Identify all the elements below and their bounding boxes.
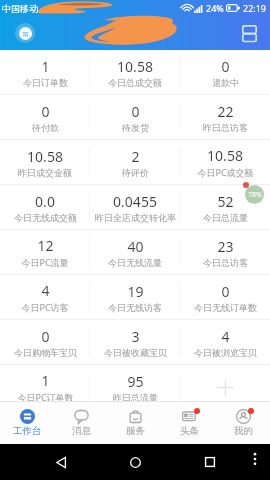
staticText: 0 [41, 102, 50, 121]
button[interactable]: 3 [90, 320, 180, 364]
button[interactable]: 1 [0, 50, 90, 94]
staticText: 10.58 [207, 146, 243, 165]
button[interactable]: 工作台 [0, 401, 54, 444]
staticText: 今日PC成交额 [197, 166, 254, 178]
staticText: 95 [127, 372, 144, 391]
button[interactable]: 0 [180, 50, 270, 94]
button[interactable]: 4 [180, 320, 270, 364]
staticText: 昨日成交金额 [18, 167, 72, 178]
staticText: 23 [217, 237, 234, 256]
button[interactable]: 95 [90, 365, 180, 401]
staticText: 78% [248, 190, 262, 200]
staticText: 10.58 [27, 147, 63, 166]
staticText: 今日无线访客 [108, 302, 162, 313]
staticText: 今日总流量 [203, 212, 248, 223]
button[interactable]: Recent apps [198, 450, 222, 474]
button[interactable]: 0 [0, 95, 90, 139]
button[interactable]: 0 [90, 95, 180, 139]
button[interactable]: 10.58 [90, 50, 180, 94]
staticText: 服务 [126, 425, 145, 437]
staticText: 退款中 [212, 77, 239, 88]
staticText: 22:19 [243, 2, 267, 14]
button[interactable]: 0 [0, 320, 90, 364]
staticText: 3 [131, 327, 140, 346]
button[interactable]: 我的 [216, 401, 270, 444]
button[interactable]: 服务 [108, 401, 162, 444]
staticText: 19 [127, 282, 144, 301]
staticText: 今日被浏览宝贝 [194, 347, 257, 358]
button[interactable]: 头条 [162, 401, 216, 444]
button[interactable]: 消息 [54, 401, 108, 444]
staticText: 52 [217, 192, 234, 211]
button[interactable]: Home [123, 450, 147, 474]
button[interactable]: 12 [0, 230, 90, 274]
staticText: 中国移动 [2, 3, 38, 14]
button[interactable]: 52 [180, 185, 270, 229]
staticText: 1 [41, 371, 50, 390]
button[interactable]: Switch layout [237, 21, 261, 45]
staticText: 今日无线成交额 [14, 212, 77, 223]
button[interactable]: Profile [15, 23, 35, 43]
button[interactable]: 23 [180, 230, 270, 274]
button[interactable]: 22 [180, 95, 270, 139]
staticText: 0.0455 [113, 192, 157, 211]
staticText: 12 [37, 236, 54, 255]
staticText: 0 [41, 327, 50, 346]
staticText: 今日订单数 [23, 77, 68, 88]
button[interactable]: 0.0455 [90, 185, 180, 229]
staticText: 40 [127, 237, 144, 256]
staticText: 4 [221, 327, 230, 346]
button[interactable]: 1 [0, 365, 90, 401]
button[interactable]: Task progress 78 percent [245, 185, 264, 204]
staticText: 工作台 [13, 425, 42, 437]
staticText: 昨日全店成交转化率 [95, 212, 176, 223]
staticText: 0 [221, 282, 230, 301]
staticText: 昨日总访客 [203, 122, 248, 133]
button[interactable]: 0.0 [0, 185, 90, 229]
staticText: 今日PC订单数 [17, 391, 74, 401]
staticText: 今日总访客 [203, 257, 248, 268]
staticText: 今日被收藏宝贝 [104, 347, 167, 358]
staticText: 消息 [72, 425, 91, 437]
staticText: 0 [221, 57, 230, 76]
staticText: 1 [41, 57, 50, 76]
button[interactable]: 0 [180, 275, 270, 319]
staticText: 24% [206, 2, 224, 14]
staticText: 今日PC流量 [21, 256, 69, 268]
staticText: 昨日总流量 [113, 392, 158, 401]
staticText: 今日无线订单数 [194, 302, 257, 313]
staticText: 10.58 [117, 57, 153, 76]
staticText: 2 [131, 147, 140, 166]
button[interactable]: 10.58 [0, 140, 90, 184]
staticText: 待付款 [32, 122, 59, 133]
staticText: 今日总成交额 [108, 77, 162, 88]
staticText: 22 [217, 102, 234, 121]
button[interactable]: More options [246, 450, 264, 468]
staticText: 4 [41, 281, 50, 300]
button[interactable]: 19 [90, 275, 180, 319]
staticText: 头条 [180, 425, 199, 437]
staticText: 0 [131, 102, 140, 121]
staticText: 我的 [234, 425, 253, 437]
button[interactable]: 4 [0, 275, 90, 319]
staticText: 0.0 [35, 192, 55, 211]
staticText: 今日无线流量 [108, 257, 162, 268]
staticText: 待发货 [122, 122, 149, 133]
button[interactable]: Back [49, 450, 73, 474]
button[interactable]: 10.58 [180, 140, 270, 184]
button[interactable]: 40 [90, 230, 180, 274]
staticText: 今日PC访客 [21, 301, 69, 313]
button[interactable]: 2 [90, 140, 180, 184]
staticText: 今日购物车宝贝 [14, 347, 77, 358]
staticText: 待评价 [122, 167, 149, 178]
